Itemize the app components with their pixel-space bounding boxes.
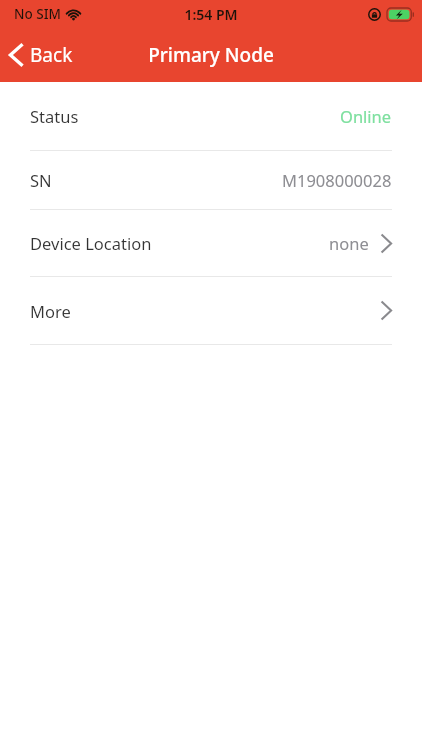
staticText: Primary Node (148, 42, 274, 68)
staticText: SN (30, 169, 52, 191)
button[interactable]: Status (0, 82, 422, 150)
staticText: M1908000028 (282, 169, 392, 191)
button[interactable]: Device Location (0, 210, 422, 276)
button[interactable]: More (0, 277, 422, 344)
other: Open Device Location (381, 234, 392, 253)
button[interactable]: Back (0, 28, 85, 82)
staticText: none (329, 232, 369, 254)
staticText: Status (30, 105, 79, 127)
staticText: Back (30, 42, 73, 68)
button[interactable]: SN (0, 151, 422, 209)
staticText: More (30, 300, 71, 322)
staticText: Device Location (30, 232, 152, 254)
staticText: No SIM (14, 5, 61, 23)
staticText: Online (340, 105, 392, 127)
staticText: 1:54 PM (184, 5, 238, 24)
other: Open More (381, 301, 392, 320)
